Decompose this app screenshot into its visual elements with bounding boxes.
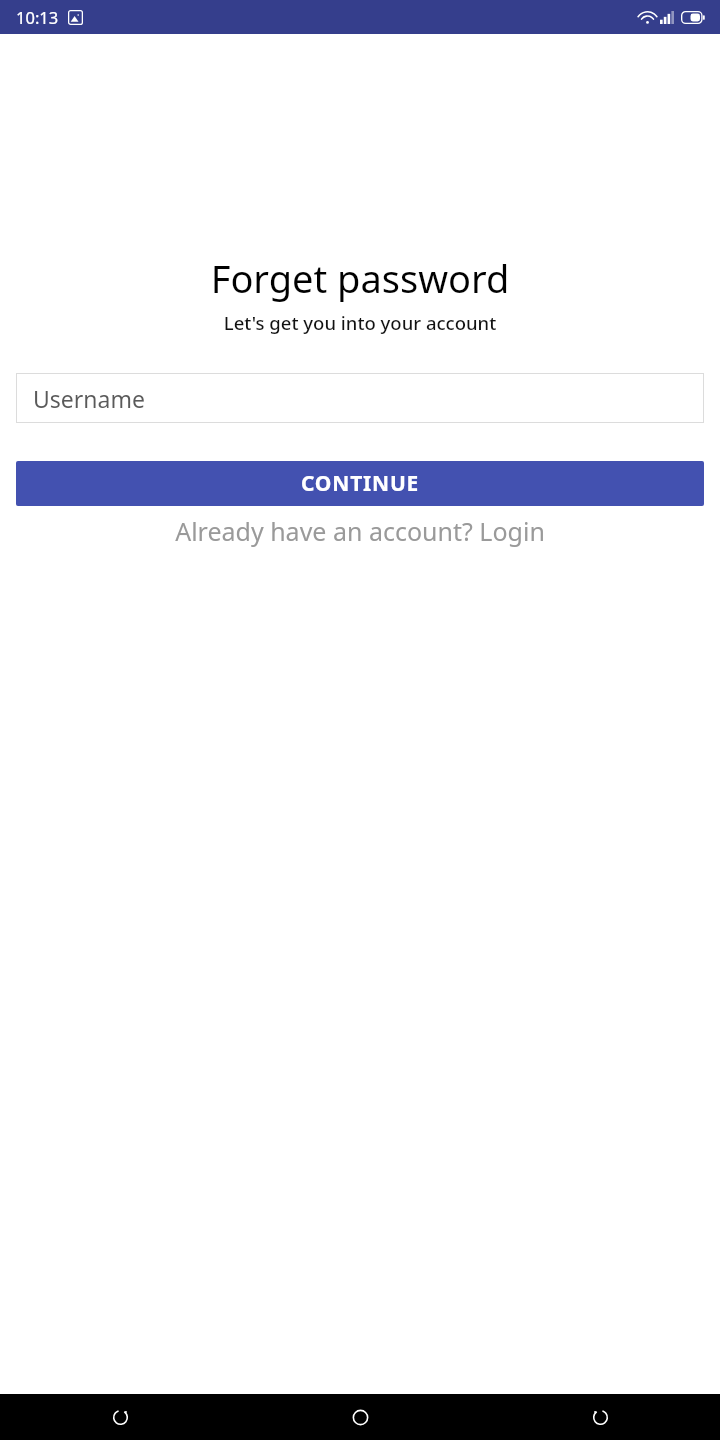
button[interactable]: Recents (0, 1394, 240, 1440)
button[interactable]: Back (480, 1394, 720, 1440)
staticText: Let's get you into your account (0, 310, 720, 335)
staticText: 10:13 (16, 6, 59, 28)
button[interactable]: CONTINUE (16, 461, 704, 506)
staticText: Already have an account? Login (175, 514, 545, 548)
button[interactable]: Already have an account? Login (0, 514, 720, 548)
staticText: CONTINUE (301, 469, 420, 498)
staticText: Forget password (0, 252, 720, 304)
button[interactable]: Username (16, 373, 704, 423)
staticText: Username (33, 383, 145, 414)
button[interactable]: Home (240, 1394, 480, 1440)
